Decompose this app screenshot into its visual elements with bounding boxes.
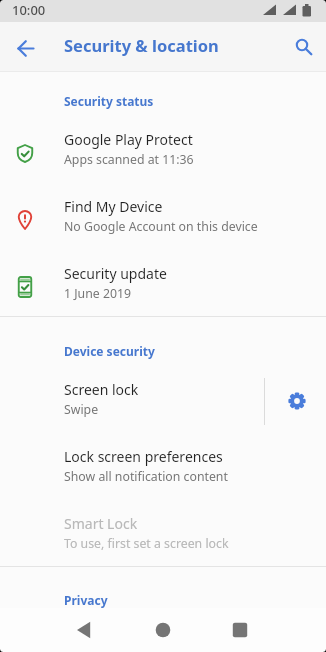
- button[interactable]: Smart Lock: [0, 502, 326, 566]
- staticText: Privacy: [64, 592, 108, 608]
- staticText: Apps scanned at 11:36: [64, 151, 194, 168]
- button[interactable]: Security update: [0, 252, 326, 316]
- button[interactable]: Screen lock: [0, 368, 264, 435]
- button[interactable]: [61, 608, 107, 652]
- button[interactable]: [140, 608, 186, 652]
- staticText: Security status: [64, 93, 154, 109]
- staticText: Find My Device: [64, 197, 163, 216]
- staticText: Device security: [64, 343, 155, 359]
- button[interactable]: [274, 379, 320, 425]
- button[interactable]: Find My Device: [0, 185, 326, 252]
- staticText: Swipe: [64, 401, 99, 418]
- staticText: Screen lock: [64, 380, 139, 399]
- staticText: Show all notification content: [64, 468, 228, 485]
- staticText: 1 June 2019: [64, 285, 132, 302]
- staticText: Security & location: [64, 34, 219, 56]
- button[interactable]: Lock screen preferences: [0, 435, 326, 502]
- button[interactable]: Google Play Protect: [0, 118, 326, 185]
- button[interactable]: [0, 23, 48, 71]
- staticText: 10:00: [12, 1, 46, 19]
- button[interactable]: [278, 23, 326, 71]
- button[interactable]: [217, 608, 263, 652]
- staticText: No Google Account on this device: [64, 218, 258, 235]
- staticText: Smart Lock: [64, 514, 138, 533]
- staticText: Lock screen preferences: [64, 447, 223, 466]
- staticText: To use, first set a screen lock: [64, 535, 229, 552]
- staticText: Google Play Protect: [64, 130, 193, 149]
- staticText: Security update: [64, 264, 167, 283]
